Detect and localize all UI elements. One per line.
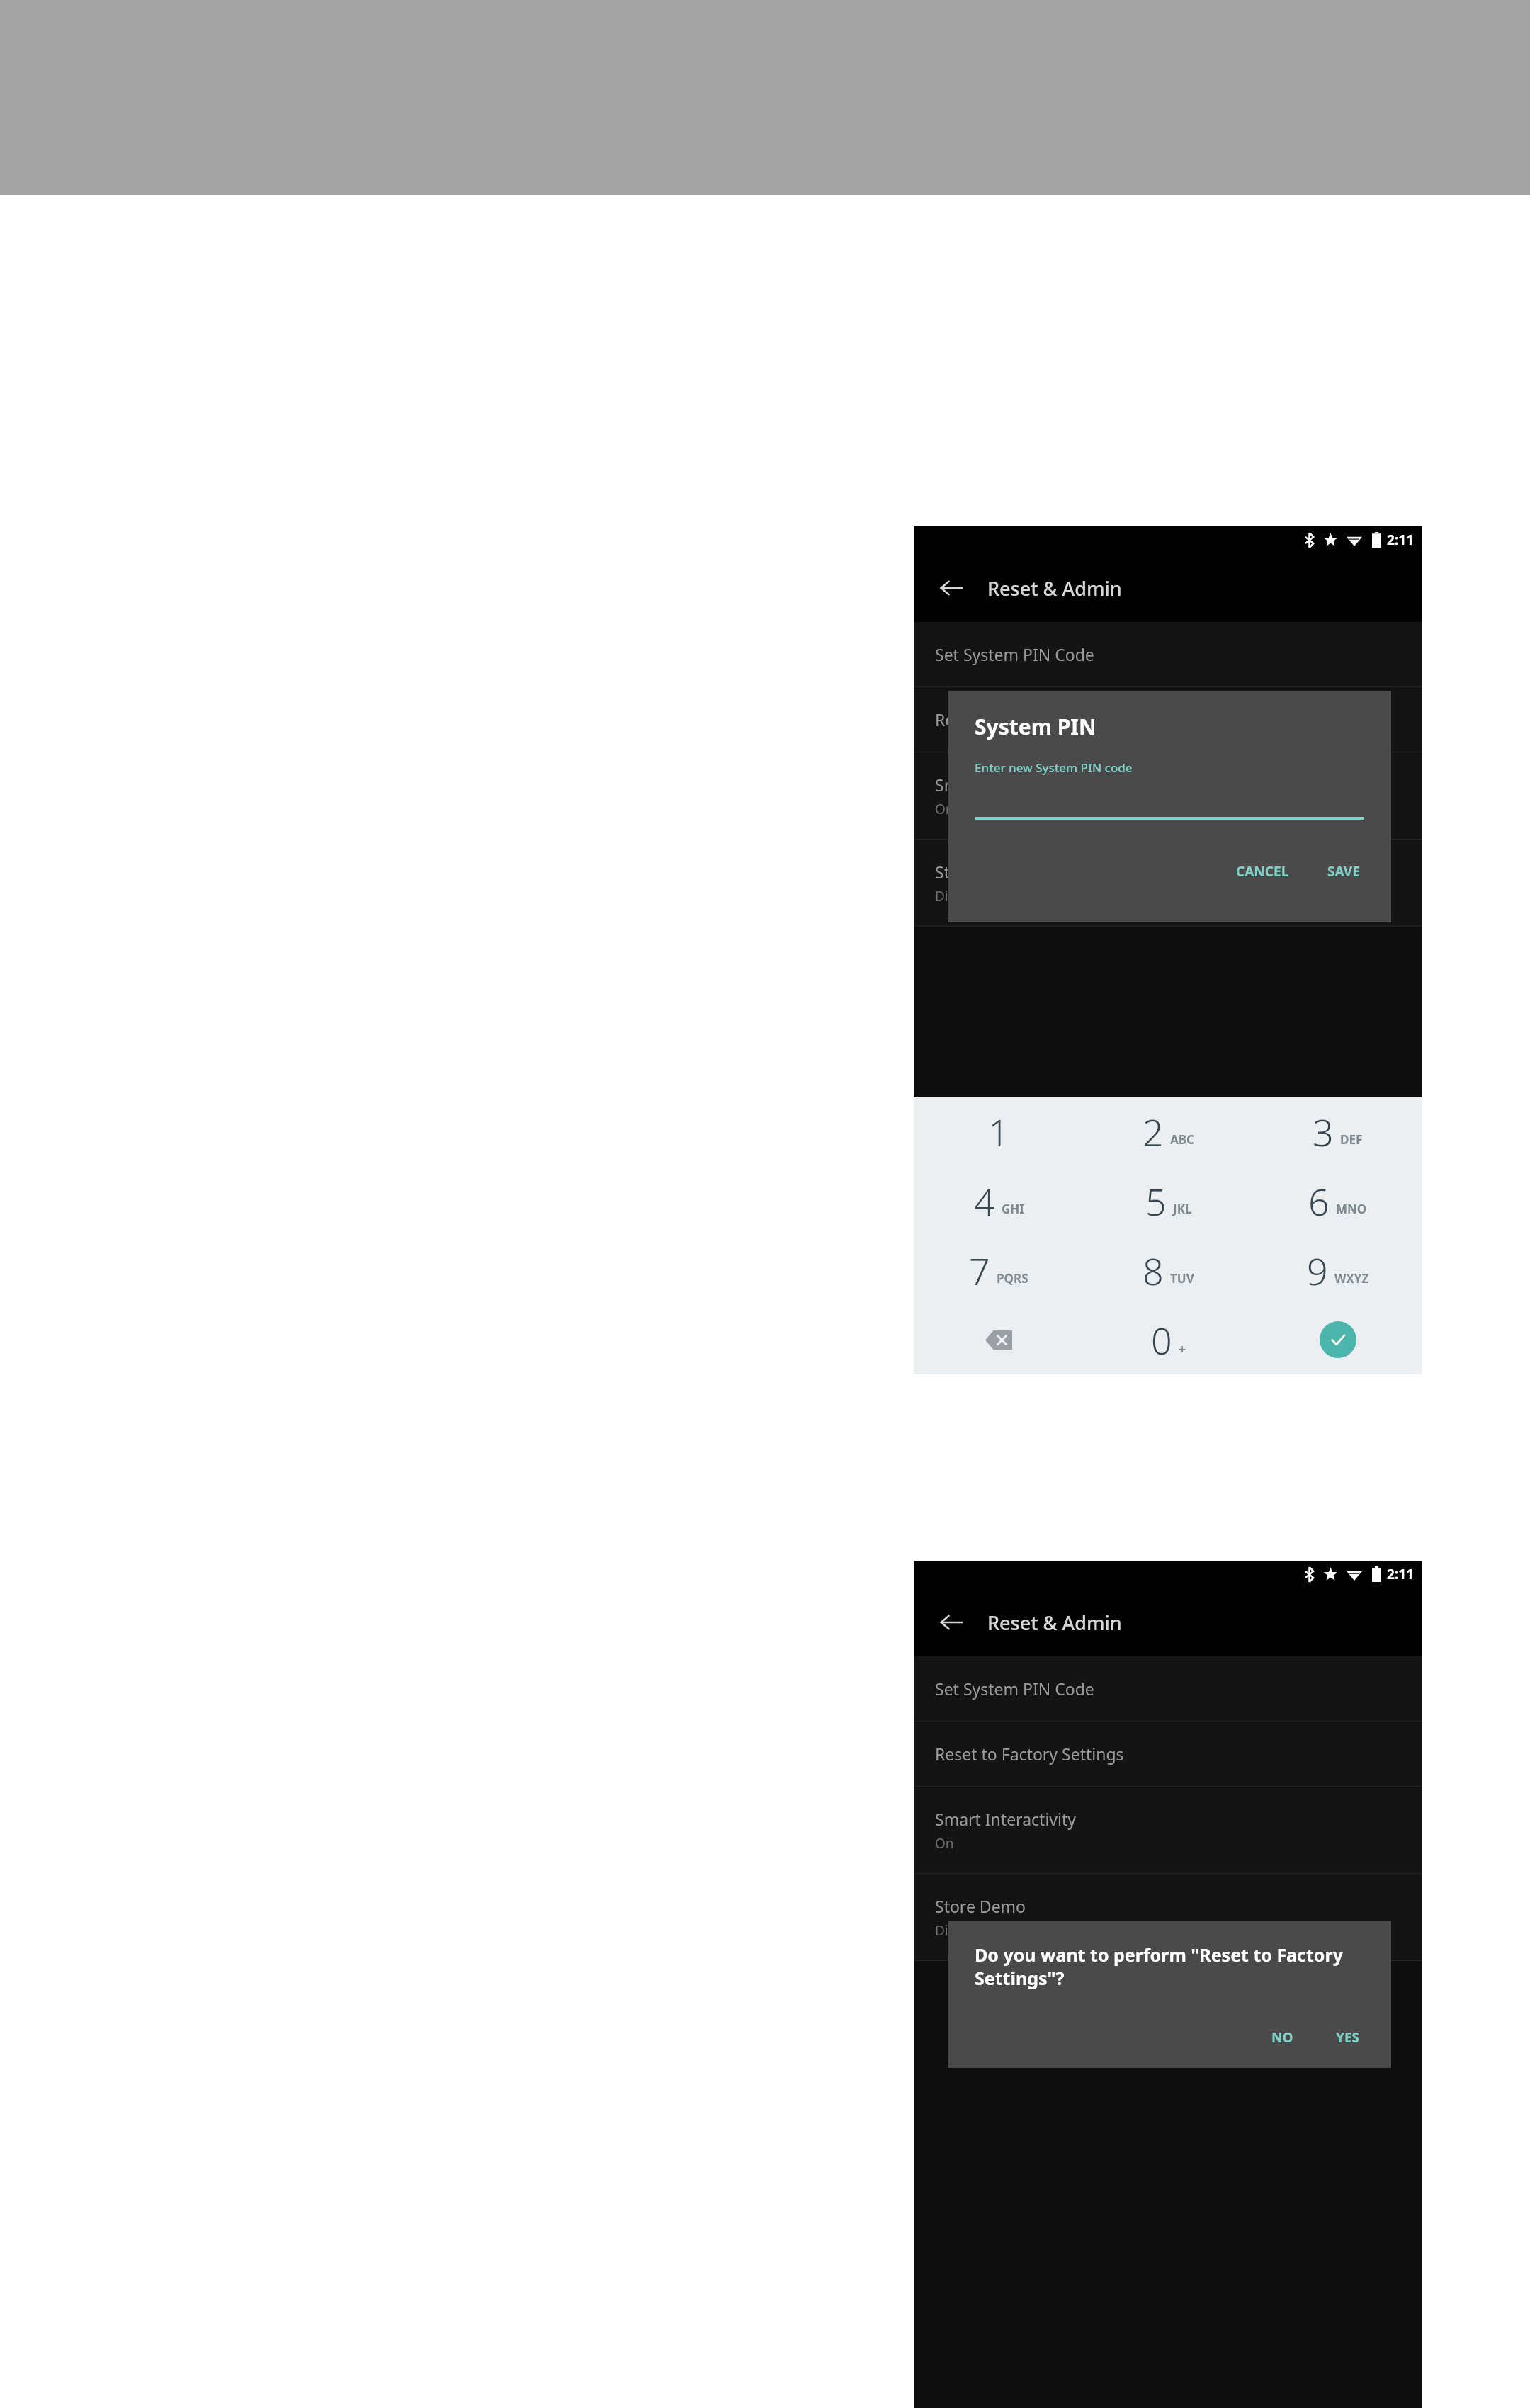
staticText: Disabled	[935, 1921, 990, 1940]
button[interactable]: YES	[1332, 2023, 1364, 2052]
staticText: PQRS	[997, 1270, 1028, 1287]
button[interactable]: Set System PIN Code	[914, 1656, 1422, 1722]
staticText: GHI	[1002, 1201, 1024, 1217]
button[interactable]: 6	[1253, 1166, 1422, 1236]
staticText: +	[1179, 1340, 1186, 1358]
staticText: 2	[1143, 1107, 1164, 1157]
staticText: Set System PIN Code	[935, 1678, 1094, 1700]
staticText: On	[935, 800, 954, 818]
button[interactable]: Back	[935, 1606, 968, 1639]
staticText: MNO	[1336, 1201, 1367, 1217]
button[interactable]: 3	[1253, 1097, 1422, 1166]
staticText: 9	[1307, 1245, 1328, 1296]
staticText: Disabled	[935, 887, 990, 905]
button[interactable]: NO	[1267, 2023, 1298, 2052]
staticText: Reset & Admin	[987, 575, 1122, 601]
button[interactable]: 9	[1253, 1236, 1422, 1305]
staticText: Set System PIN Code	[935, 643, 1094, 665]
button[interactable]: 0	[1084, 1305, 1253, 1374]
staticText: On	[935, 1834, 954, 1853]
button[interactable]: Reset to Factory Settings	[914, 687, 1422, 752]
staticText: 8	[1143, 1245, 1164, 1296]
staticText: 6	[1308, 1176, 1330, 1226]
staticText: DEF	[1340, 1131, 1363, 1148]
button[interactable]: Smart Interactivity	[914, 1787, 1422, 1874]
staticText: Store Demo	[935, 861, 1026, 883]
staticText: Reset to Factory Settings	[935, 1743, 1124, 1765]
button[interactable]: Back	[935, 572, 968, 604]
button[interactable]: 8	[1084, 1236, 1253, 1305]
staticText: Smart Interactivity	[935, 1808, 1076, 1830]
button[interactable]: Backspace	[914, 1305, 1084, 1374]
staticText: Reset to Factory Settings	[935, 708, 1124, 730]
button[interactable]: Done	[1253, 1305, 1422, 1374]
staticText: 7	[969, 1245, 990, 1296]
staticText: 2:11	[1387, 1565, 1414, 1583]
staticText: 3	[1313, 1107, 1334, 1157]
button[interactable]: Reset to Factory Settings	[914, 1722, 1422, 1787]
button[interactable]: 7	[914, 1236, 1084, 1305]
staticText: 0	[1151, 1315, 1172, 1365]
staticText: Store Demo	[935, 1895, 1026, 1917]
staticText: System PIN	[975, 712, 1096, 741]
button[interactable]: Store Demo	[914, 1874, 1422, 1961]
staticText: WXYZ	[1334, 1270, 1369, 1287]
button[interactable]: SAVE	[1323, 857, 1364, 886]
staticText: CANCEL	[1236, 862, 1289, 881]
staticText: Smart Interactivity	[935, 774, 1076, 796]
button[interactable]: Smart Interactivity	[914, 752, 1422, 840]
staticText: NO	[1271, 2028, 1293, 2047]
staticText: Reset & Admin	[987, 1610, 1122, 1636]
staticText: 1	[988, 1107, 1009, 1157]
staticText: TUV	[1170, 1270, 1194, 1287]
staticText: YES	[1336, 2028, 1360, 2047]
staticText: Do you want to perform "Reset to Factory…	[975, 1943, 1343, 1990]
button[interactable]: 1	[914, 1097, 1084, 1166]
staticText: Enter new System PIN code	[975, 759, 1133, 776]
button[interactable]: CANCEL	[1232, 857, 1293, 886]
button[interactable]: Store Demo	[914, 840, 1422, 927]
button[interactable]: 2	[1084, 1097, 1253, 1166]
staticText: JKL	[1173, 1201, 1192, 1217]
staticText: 2:11	[1387, 531, 1414, 549]
staticText: 5	[1145, 1176, 1167, 1226]
staticText: SAVE	[1327, 862, 1360, 881]
button[interactable]: 4	[914, 1166, 1084, 1236]
button[interactable]: Set System PIN Code	[914, 622, 1422, 687]
staticText: 4	[974, 1176, 995, 1226]
staticText: ABC	[1170, 1131, 1194, 1148]
button[interactable]: 5	[1084, 1166, 1253, 1236]
